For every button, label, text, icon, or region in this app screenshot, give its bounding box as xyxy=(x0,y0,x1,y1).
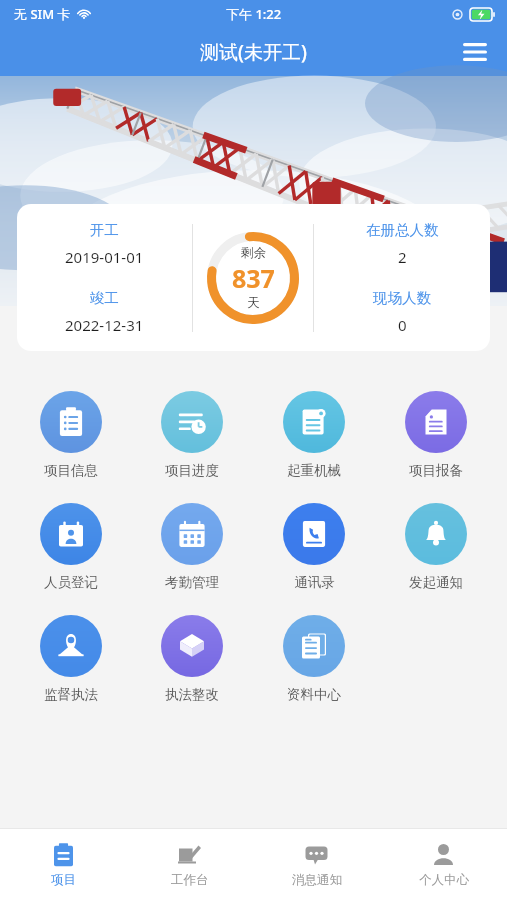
staticText: 资料中心 xyxy=(287,686,341,703)
button[interactable]: 消息通知 xyxy=(253,829,380,900)
button[interactable]: 项目进度 xyxy=(131,387,253,483)
staticText: 837 xyxy=(232,261,275,295)
staticText: 测试(未开工) xyxy=(200,39,307,65)
staticText: 项目进度 xyxy=(165,462,219,479)
button[interactable]: 考勤管理 xyxy=(131,499,253,595)
staticText: 个人中心 xyxy=(419,872,469,888)
staticText: 2022-12-31 xyxy=(65,315,144,335)
button[interactable]: 执法整改 xyxy=(131,611,253,707)
staticText: 考勤管理 xyxy=(165,574,219,591)
staticText: 现场人数 xyxy=(373,289,431,307)
staticText: 天 xyxy=(247,295,260,311)
staticText: 项目信息 xyxy=(44,462,98,479)
staticText: 0 xyxy=(398,315,407,335)
button[interactable]: Menu xyxy=(453,30,497,74)
button[interactable]: 项目报备 xyxy=(375,387,497,483)
staticText: 下午 1:22 xyxy=(226,5,282,23)
staticText: 起重机械 xyxy=(287,462,341,479)
button[interactable]: 资料中心 xyxy=(253,611,375,707)
button[interactable]: 个人中心 xyxy=(380,829,507,900)
staticText: 项目报备 xyxy=(409,462,463,479)
staticText: 无 SIM 卡 xyxy=(14,5,71,23)
staticText: 剩余 xyxy=(241,245,266,261)
staticText: 2019-01-01 xyxy=(65,247,144,267)
staticText: 发起通知 xyxy=(409,574,463,591)
staticText: 消息通知 xyxy=(292,872,342,888)
staticText: 人员登记 xyxy=(44,574,98,591)
button[interactable]: 起重机械 xyxy=(253,387,375,483)
button[interactable]: 监督执法 xyxy=(10,611,131,707)
button[interactable]: 人员登记 xyxy=(10,499,131,595)
button[interactable]: 开工 xyxy=(17,204,490,351)
staticText: 开工 xyxy=(90,221,119,239)
button[interactable]: 发起通知 xyxy=(375,499,497,595)
button[interactable]: 工作台 xyxy=(126,829,253,900)
staticText: 监督执法 xyxy=(44,686,98,703)
staticText: 2 xyxy=(398,247,407,267)
button[interactable]: 项目信息 xyxy=(10,387,131,483)
staticText: 项目 xyxy=(51,872,76,888)
button[interactable]: 项目 xyxy=(0,829,126,900)
staticText: 执法整改 xyxy=(165,686,219,703)
staticText: 通讯录 xyxy=(294,574,335,591)
staticText: 在册总人数 xyxy=(366,221,439,239)
staticText: 工作台 xyxy=(171,872,209,888)
staticText: 竣工 xyxy=(90,289,119,307)
button[interactable]: 通讯录 xyxy=(253,499,375,595)
